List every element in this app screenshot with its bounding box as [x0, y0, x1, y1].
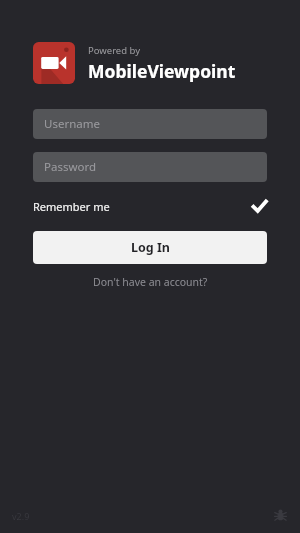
staticText: v2.9	[12, 510, 30, 522]
button[interactable]: Log In	[33, 231, 267, 264]
button[interactable]: Don't have an account?	[33, 272, 267, 292]
staticText: Password	[44, 159, 97, 175]
staticText: Powered by	[88, 44, 141, 57]
staticText: Username	[44, 116, 100, 132]
button[interactable]: Username	[33, 109, 267, 139]
staticText: Don't have an account?	[93, 275, 208, 289]
button[interactable]: Remember me	[33, 194, 267, 218]
button[interactable]: Password	[33, 152, 267, 182]
staticText: Log In	[131, 239, 170, 256]
staticText: MobileViewpoint	[88, 59, 236, 83]
button[interactable]: Report a bug	[269, 504, 291, 526]
staticText: Remember me	[33, 199, 110, 214]
